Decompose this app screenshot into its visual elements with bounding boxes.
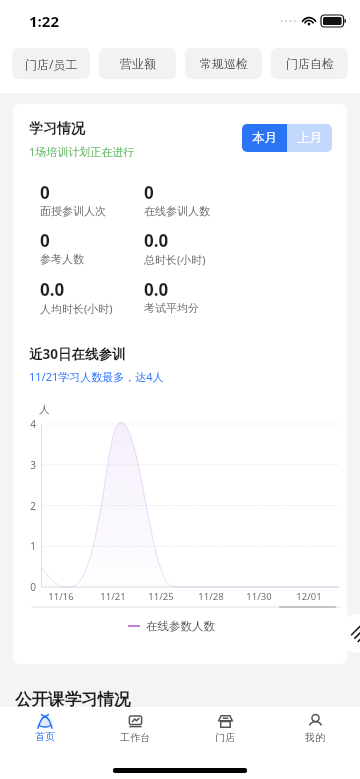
button[interactable]: 工作台 — [90, 707, 180, 753]
staticText: 面授参训人次 — [40, 204, 106, 218]
staticText: 12/01 — [294, 590, 324, 603]
staticText: 11/28 — [196, 590, 226, 603]
staticText: 0.0 — [144, 229, 169, 252]
staticText: 门店/员工 — [25, 56, 78, 72]
staticText: 11/25 — [146, 590, 176, 603]
button[interactable]: 门店/员工 — [12, 48, 90, 79]
staticText: 0.0 — [144, 278, 169, 301]
staticText: 近30日在线参训 — [29, 345, 126, 363]
button[interactable]: Quick actions — [339, 614, 360, 653]
staticText: 营业额 — [120, 56, 156, 71]
button[interactable]: 常规巡检 — [185, 48, 262, 79]
staticText: 人 — [39, 403, 50, 416]
staticText: 4 — [25, 417, 36, 431]
staticText: 在线参数人数 — [146, 619, 215, 633]
staticText: 考试平均分 — [144, 301, 199, 315]
staticText: 0 — [25, 580, 36, 594]
staticText: 11/30 — [244, 590, 274, 603]
staticText: 人均时长(小时) — [40, 301, 113, 316]
staticText: 本月 — [252, 130, 277, 146]
staticText: 首页 — [35, 730, 55, 743]
button[interactable]: 门店 — [180, 707, 270, 753]
staticText: 2 — [25, 499, 36, 513]
button[interactable]: 门店自检 — [271, 48, 348, 79]
staticText: 1 — [25, 539, 36, 553]
staticText: 参考人数 — [40, 252, 84, 266]
staticText: 学习情况 — [29, 120, 85, 138]
staticText: 0 — [40, 229, 50, 252]
staticText: 0 — [144, 181, 154, 204]
staticText: 公开课学习情况 — [15, 689, 131, 710]
staticText: 3 — [25, 458, 36, 472]
staticText: 我的 — [305, 731, 325, 744]
staticText: 常规巡检 — [200, 56, 248, 71]
button[interactable]: 首页 — [0, 707, 90, 753]
button[interactable]: 本月 — [242, 124, 287, 152]
staticText: 1:22 — [29, 11, 59, 31]
button[interactable]: 我的 — [270, 707, 360, 753]
staticText: 0.0 — [40, 278, 65, 301]
staticText: 0 — [40, 181, 50, 204]
staticText: 上月 — [297, 130, 322, 146]
staticText: 门店 — [215, 731, 235, 744]
staticText: 门店自检 — [286, 56, 334, 71]
staticText: 1场培训计划正在进行 — [29, 144, 135, 159]
staticText: 总时长(小时) — [144, 252, 206, 267]
button[interactable]: 营业额 — [99, 48, 176, 79]
button[interactable]: 上月 — [287, 124, 332, 152]
staticText: 11/16 — [46, 590, 76, 603]
staticText: 工作台 — [120, 731, 150, 744]
staticText: 11/21 — [98, 590, 128, 603]
staticText: 在线参训人数 — [144, 204, 210, 218]
staticText: 11/21学习人数最多，达4人 — [29, 369, 164, 384]
